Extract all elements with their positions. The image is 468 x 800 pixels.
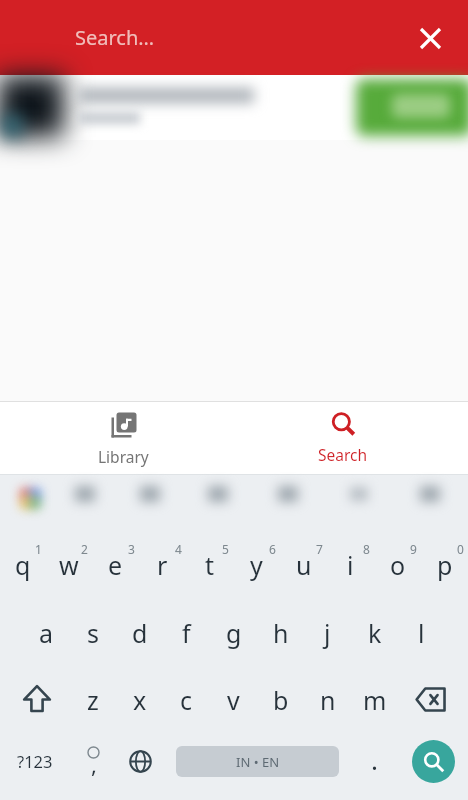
button[interactable]: a	[23, 596, 69, 662]
staticText: e	[108, 548, 123, 582]
staticText: 6	[269, 541, 276, 557]
button[interactable]: o	[374, 530, 421, 596]
staticText: q	[15, 548, 31, 582]
staticText: Search	[318, 444, 368, 465]
button[interactable]: w	[46, 530, 92, 596]
staticText: 9	[410, 541, 417, 557]
staticText: d	[132, 616, 148, 650]
staticText: v	[227, 683, 240, 717]
staticText: b	[273, 683, 289, 717]
button[interactable]	[117, 728, 164, 794]
staticText: u	[296, 548, 312, 582]
staticText: n	[320, 683, 336, 717]
staticText: i	[347, 548, 354, 582]
staticText: .	[371, 742, 378, 777]
button[interactable]: y	[233, 530, 280, 596]
staticText: 0	[457, 541, 464, 557]
button[interactable]: p	[421, 530, 468, 596]
staticText: s	[87, 616, 99, 650]
button[interactable]: d	[116, 596, 163, 662]
button[interactable]: b	[257, 662, 304, 728]
staticText: m	[363, 683, 387, 717]
button[interactable]: j	[304, 596, 351, 662]
button[interactable]	[410, 18, 450, 58]
staticText: 5	[222, 541, 229, 557]
staticText: k	[368, 616, 382, 650]
staticText: r	[157, 548, 168, 582]
button[interactable]: Search	[234, 402, 468, 474]
staticText: ,	[91, 749, 97, 779]
button[interactable]: t	[186, 530, 233, 596]
button[interactable]: n	[304, 662, 351, 728]
button[interactable]: q	[0, 530, 46, 596]
button[interactable]: l	[398, 596, 445, 662]
staticText: ?123	[17, 750, 53, 772]
button[interactable]: s	[69, 596, 116, 662]
staticText: Search…	[75, 24, 155, 51]
button[interactable]: z	[70, 662, 116, 728]
button[interactable]: x	[116, 662, 163, 728]
button[interactable]: v	[210, 662, 257, 728]
button[interactable]: c	[163, 662, 210, 728]
staticText: 4	[175, 541, 182, 557]
button[interactable]: .	[351, 728, 398, 794]
button[interactable]: IN • EN	[164, 728, 351, 794]
staticText: IN • EN	[236, 753, 280, 771]
staticText: o	[390, 548, 406, 582]
staticText: f	[182, 616, 191, 650]
staticText: Library	[98, 446, 149, 467]
button[interactable]	[0, 662, 70, 728]
staticText: 2	[81, 541, 88, 557]
staticText: c	[180, 683, 193, 717]
button[interactable]: ?123	[0, 728, 70, 794]
button[interactable]: u	[280, 530, 327, 596]
staticText: h	[273, 616, 289, 650]
staticText: 7	[316, 541, 323, 557]
staticText: p	[437, 548, 453, 582]
button[interactable]: m	[351, 662, 398, 728]
button[interactable]: g	[210, 596, 257, 662]
staticText: w	[59, 548, 79, 582]
button[interactable]: i	[327, 530, 374, 596]
button[interactable]	[398, 662, 468, 728]
button[interactable]	[398, 728, 468, 794]
staticText: 1	[35, 541, 42, 557]
staticText: 3	[128, 541, 135, 557]
staticText: a	[39, 616, 54, 650]
staticText: x	[133, 683, 147, 717]
button[interactable]: h	[257, 596, 304, 662]
staticText: g	[226, 616, 242, 650]
button[interactable]: Library	[0, 402, 234, 474]
button[interactable]: k	[351, 596, 398, 662]
staticText: l	[418, 616, 425, 650]
button[interactable]: f	[163, 596, 210, 662]
button[interactable]: e	[92, 530, 139, 596]
staticText: y	[250, 548, 263, 582]
button[interactable]	[0, 75, 468, 140]
staticText: 8	[363, 541, 370, 557]
button[interactable]: ,	[70, 728, 117, 794]
staticText: z	[87, 683, 99, 717]
button[interactable]: r	[139, 530, 186, 596]
staticText: t	[205, 548, 215, 582]
staticText: j	[324, 616, 331, 650]
